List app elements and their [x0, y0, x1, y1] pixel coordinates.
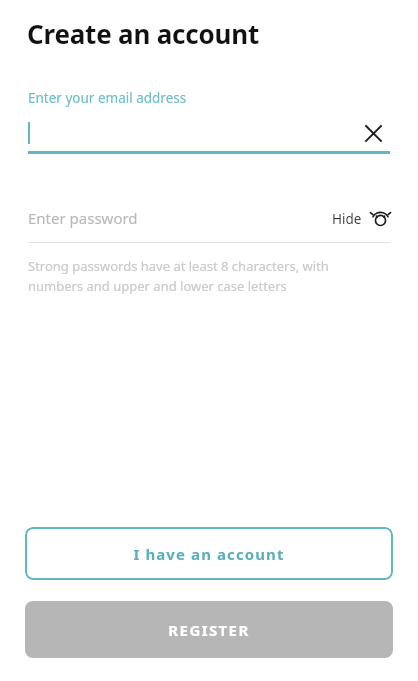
button[interactable]: Clear email — [356, 116, 390, 150]
other: Hide password — [371, 209, 390, 228]
staticText: I have an account — [133, 544, 285, 564]
staticText: numbers and upper and lower case letters — [28, 277, 287, 295]
staticText: Strong passwords have at least 8 charact… — [28, 257, 329, 275]
staticText: REGISTER — [168, 620, 250, 640]
button[interactable]: I have an account — [25, 527, 393, 580]
staticText: Enter password — [28, 208, 138, 228]
staticText: Enter your email address — [28, 89, 187, 107]
staticText: Create an account — [27, 16, 260, 51]
staticText: Hide — [332, 210, 362, 228]
button[interactable]: REGISTER — [25, 601, 393, 658]
button[interactable]: Hide — [332, 209, 390, 228]
